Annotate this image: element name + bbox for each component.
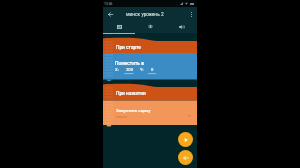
button[interactable]: Back xyxy=(103,8,117,20)
button[interactable]: Sound xyxy=(166,20,197,33)
staticText: 200 xyxy=(126,67,134,72)
staticText: Y: xyxy=(140,67,144,72)
staticText: минск xyxy=(116,114,128,118)
staticText: минск уровень 2 xyxy=(126,12,185,18)
button[interactable]: More options xyxy=(185,8,197,20)
button[interactable]: Запустить сцену xyxy=(116,108,151,113)
staticText: X: xyxy=(115,67,119,72)
button[interactable]: Stage xyxy=(135,20,166,33)
button[interactable]: При старте xyxy=(116,45,141,51)
button[interactable]: При нажатии xyxy=(116,91,146,97)
staticText: 13:46 xyxy=(104,2,113,6)
button[interactable]: Blocks xyxy=(103,20,135,33)
staticText: 0 xyxy=(151,67,154,72)
button[interactable]: Run xyxy=(178,132,193,147)
button[interactable]: Undo xyxy=(178,150,193,165)
button[interactable]: Поместить в xyxy=(115,61,144,67)
